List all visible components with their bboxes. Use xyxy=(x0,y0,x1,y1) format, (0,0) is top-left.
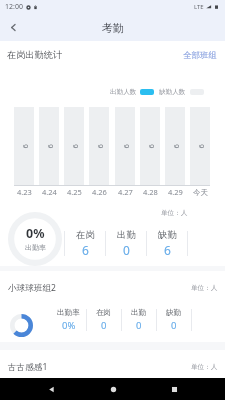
button[interactable]: Recents xyxy=(163,378,185,400)
staticText: 0 xyxy=(101,319,107,332)
staticText: 出勤 xyxy=(117,229,136,241)
staticText: 4.26 xyxy=(92,187,107,197)
button[interactable]: 在岗 xyxy=(65,229,105,258)
staticText: 6 xyxy=(19,143,29,148)
staticText: 缺勤 xyxy=(166,308,182,318)
button[interactable]: 全部班组 xyxy=(177,50,225,61)
staticText: 单位：人 xyxy=(161,209,188,217)
staticText: 小球球班组2 xyxy=(8,282,56,294)
button[interactable]: 在岗 xyxy=(87,308,121,332)
staticText: 4.23 xyxy=(17,187,32,197)
staticText: 4.25 xyxy=(67,187,82,197)
button[interactable]: Back xyxy=(40,378,62,400)
staticText: 0 xyxy=(123,242,130,258)
button[interactable]: 出勤 xyxy=(106,229,146,258)
staticText: LTE xyxy=(194,3,204,11)
staticText: 0 xyxy=(171,319,177,332)
staticText: 6 xyxy=(195,143,205,148)
staticText: 缺勤人数 xyxy=(159,88,186,96)
button[interactable]: 缺勤 xyxy=(147,229,187,258)
button[interactable]: 出勤率 xyxy=(51,308,86,332)
button[interactable]: 缺勤 xyxy=(157,308,191,332)
staticText: 出勤 xyxy=(131,308,147,318)
staticText: 单位：人 xyxy=(191,284,218,292)
staticText: 0 xyxy=(136,319,142,332)
staticText: 出勤人数 xyxy=(110,88,137,96)
staticText: 4.28 xyxy=(143,187,158,197)
staticText: 0% xyxy=(62,319,76,332)
button[interactable]: 出勤 xyxy=(122,308,156,332)
staticText: 缺勤 xyxy=(158,229,177,241)
button[interactable]: Back xyxy=(0,14,27,41)
staticText: 考勤 xyxy=(102,21,124,35)
staticText: 6 xyxy=(170,143,180,148)
staticText: 今天 xyxy=(193,188,208,197)
staticText: 0% xyxy=(26,225,45,242)
staticText: 在岗 xyxy=(96,308,112,318)
staticText: 4.24 xyxy=(42,187,57,197)
staticText: 在岗 xyxy=(76,229,95,241)
staticText: 出勤率 xyxy=(25,243,46,252)
staticText: 12:00 xyxy=(5,2,23,12)
staticText: 6 xyxy=(94,143,104,148)
button[interactable]: Home xyxy=(102,378,124,400)
staticText: 出勤率 xyxy=(57,308,80,318)
staticText: 6 xyxy=(164,242,171,258)
staticText: 古古感感1 xyxy=(8,361,48,373)
staticText: 4.27 xyxy=(118,187,133,197)
staticText: 全部班组 xyxy=(183,50,217,61)
staticText: 单位：人 xyxy=(191,363,218,371)
staticText: 6 xyxy=(44,143,54,148)
staticText: 6 xyxy=(82,242,89,258)
staticText: 4.29 xyxy=(168,187,183,197)
staticText: 在岗出勤统计 xyxy=(7,49,63,61)
staticText: 6 xyxy=(120,143,130,148)
staticText: 6 xyxy=(69,143,79,148)
staticText: 6 xyxy=(145,143,155,148)
